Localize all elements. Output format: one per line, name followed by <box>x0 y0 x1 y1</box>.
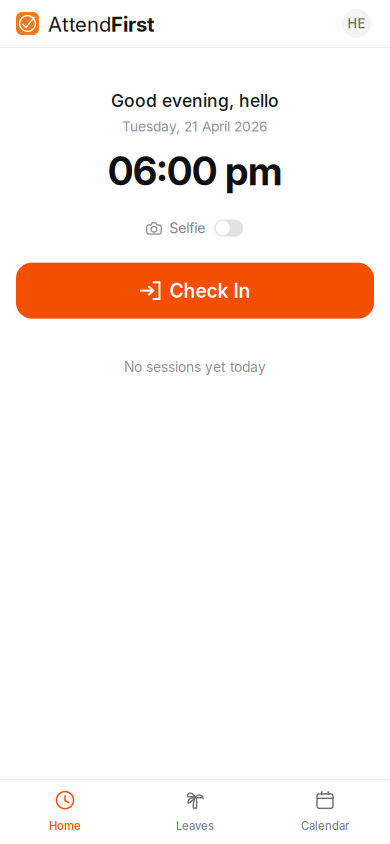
button[interactable]: Selfie toggle <box>214 220 243 237</box>
button[interactable]: Profile <box>342 9 371 38</box>
staticText: Leaves <box>176 819 214 833</box>
staticText: Good evening, hello <box>111 90 279 111</box>
staticText: HE <box>347 16 365 31</box>
button[interactable]: Calendar <box>260 780 390 844</box>
staticText: Home <box>49 819 81 833</box>
button[interactable]: Leaves <box>130 780 260 844</box>
staticText: Calendar <box>301 819 349 833</box>
staticText: Tuesday, 21 April 2026 <box>122 118 268 135</box>
staticText: AttendFirst <box>48 12 154 36</box>
staticText: 06:00 pm <box>108 148 282 195</box>
staticText: No sessions yet today <box>124 359 266 375</box>
staticText: Check In <box>169 279 250 302</box>
button[interactable]: Home <box>0 780 130 844</box>
button[interactable]: Check In <box>16 263 374 319</box>
staticText: Selfie <box>169 219 205 237</box>
button[interactable]: AttendFirst <box>16 11 154 35</box>
